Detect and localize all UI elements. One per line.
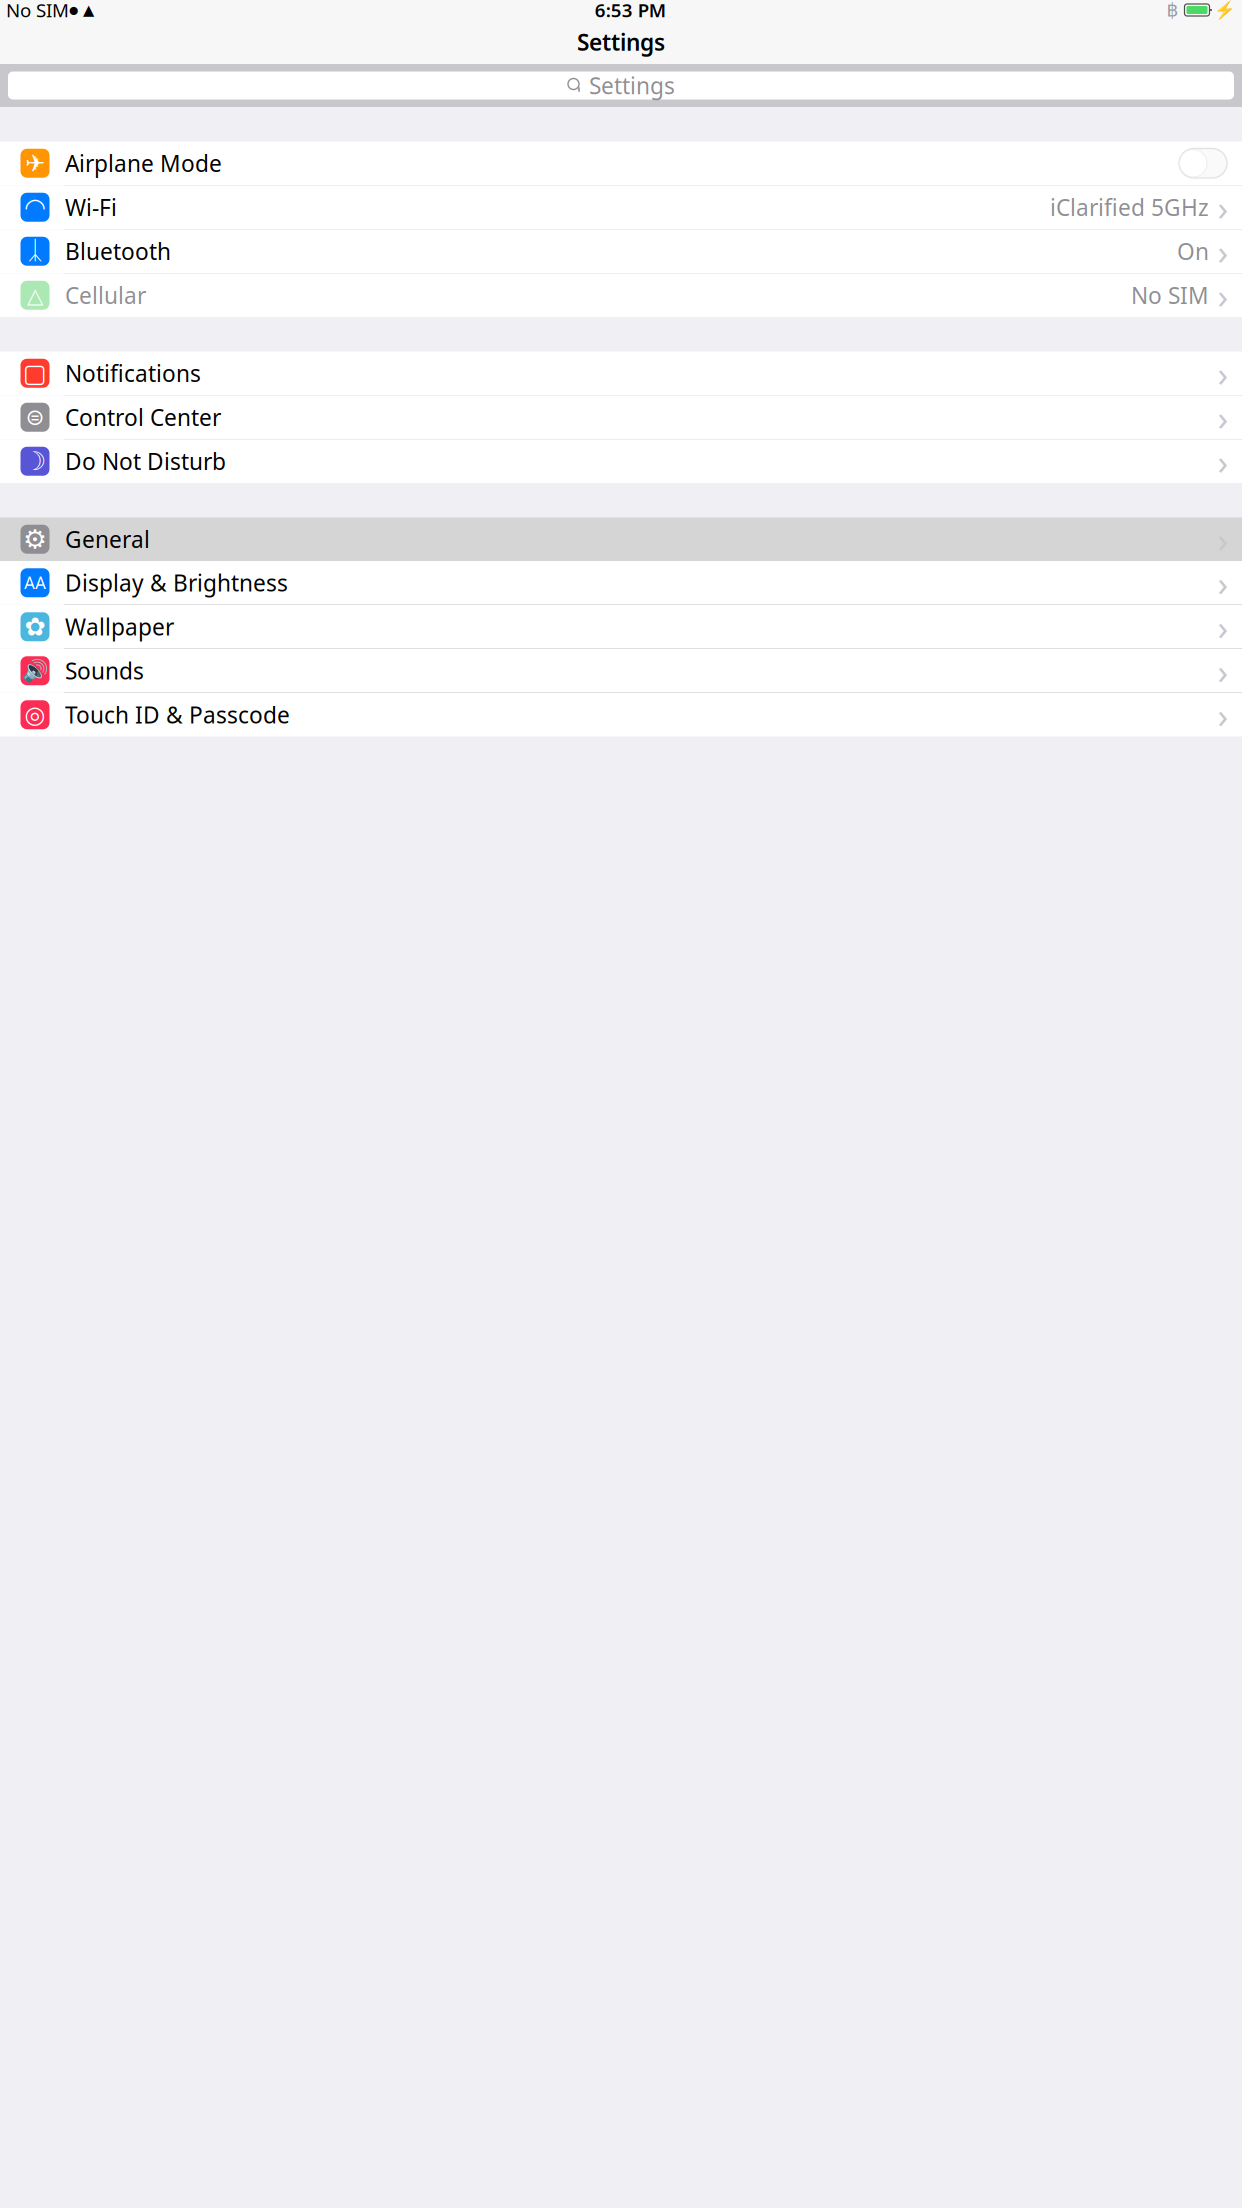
staticText: Wi-Fi [65, 192, 117, 222]
staticText: ᛣ [27, 239, 42, 264]
staticText: ◎ [24, 701, 45, 728]
button[interactable]: ⊜ [0, 395, 1242, 439]
staticText: ⊜ [25, 404, 44, 430]
button[interactable]: ᛣ [0, 229, 1242, 273]
staticText: ⚡ [1214, 0, 1236, 20]
staticText: › [1217, 560, 1228, 606]
staticText: ▢ [23, 359, 47, 388]
staticText: › [1217, 692, 1228, 738]
staticText: On [1177, 236, 1209, 266]
staticText: ฿ [1166, 0, 1178, 21]
staticText: AA [24, 571, 46, 594]
staticText: Airplane Mode [65, 148, 222, 178]
staticText: › [1217, 228, 1228, 274]
button[interactable]: ☽ [0, 439, 1242, 483]
staticText: Touch ID & Passcode [65, 700, 290, 730]
staticText: Sounds [65, 656, 144, 686]
staticText: Notifications [65, 358, 201, 388]
button[interactable]: Settings [0, 64, 1242, 107]
staticText: Display & Brightness [65, 568, 288, 598]
staticText: ☽ [23, 447, 46, 476]
staticText: △ [27, 283, 43, 307]
staticText: ◠ [24, 193, 46, 222]
button[interactable]: AA [0, 561, 1242, 604]
button[interactable]: ✈ [0, 141, 1242, 185]
button[interactable]: 🔊 [0, 649, 1242, 692]
staticText: General [65, 524, 150, 554]
staticText: 🔊 [21, 659, 48, 683]
staticText: Do Not Disturb [65, 446, 226, 476]
button[interactable]: △ [0, 273, 1242, 317]
staticText: Control Center [65, 402, 221, 432]
staticText: ✈ [25, 150, 45, 177]
staticText: Settings [577, 27, 665, 57]
button[interactable]: ✿ [0, 605, 1242, 648]
staticText: No SIM [6, 0, 69, 22]
staticText: 6:53 PM [595, 0, 666, 22]
staticText: Wallpaper [65, 612, 174, 642]
staticText: iClarified 5GHz [1050, 192, 1209, 222]
staticText: ● [69, 4, 78, 16]
staticText: ▲ [83, 2, 94, 18]
button[interactable]: ◎ [0, 693, 1242, 736]
staticText: › [1217, 350, 1228, 396]
staticText: Cellular [65, 280, 146, 310]
staticText: › [1217, 516, 1228, 562]
staticText: ⚙ [23, 524, 47, 554]
staticText: › [1217, 184, 1228, 230]
staticText: › [1217, 394, 1228, 440]
staticText: No SIM [1131, 280, 1209, 310]
staticText: ✿ [24, 612, 45, 641]
button[interactable]: ▢ [0, 351, 1242, 395]
staticText: › [1217, 438, 1228, 484]
button[interactable]: ◠ [0, 185, 1242, 229]
staticText: Settings [589, 70, 675, 100]
staticText: Bluetooth [65, 236, 171, 266]
staticText: › [1217, 604, 1228, 650]
button[interactable]: ⚙ [0, 517, 1242, 561]
staticText: › [1217, 648, 1228, 694]
staticText: › [1217, 272, 1228, 318]
